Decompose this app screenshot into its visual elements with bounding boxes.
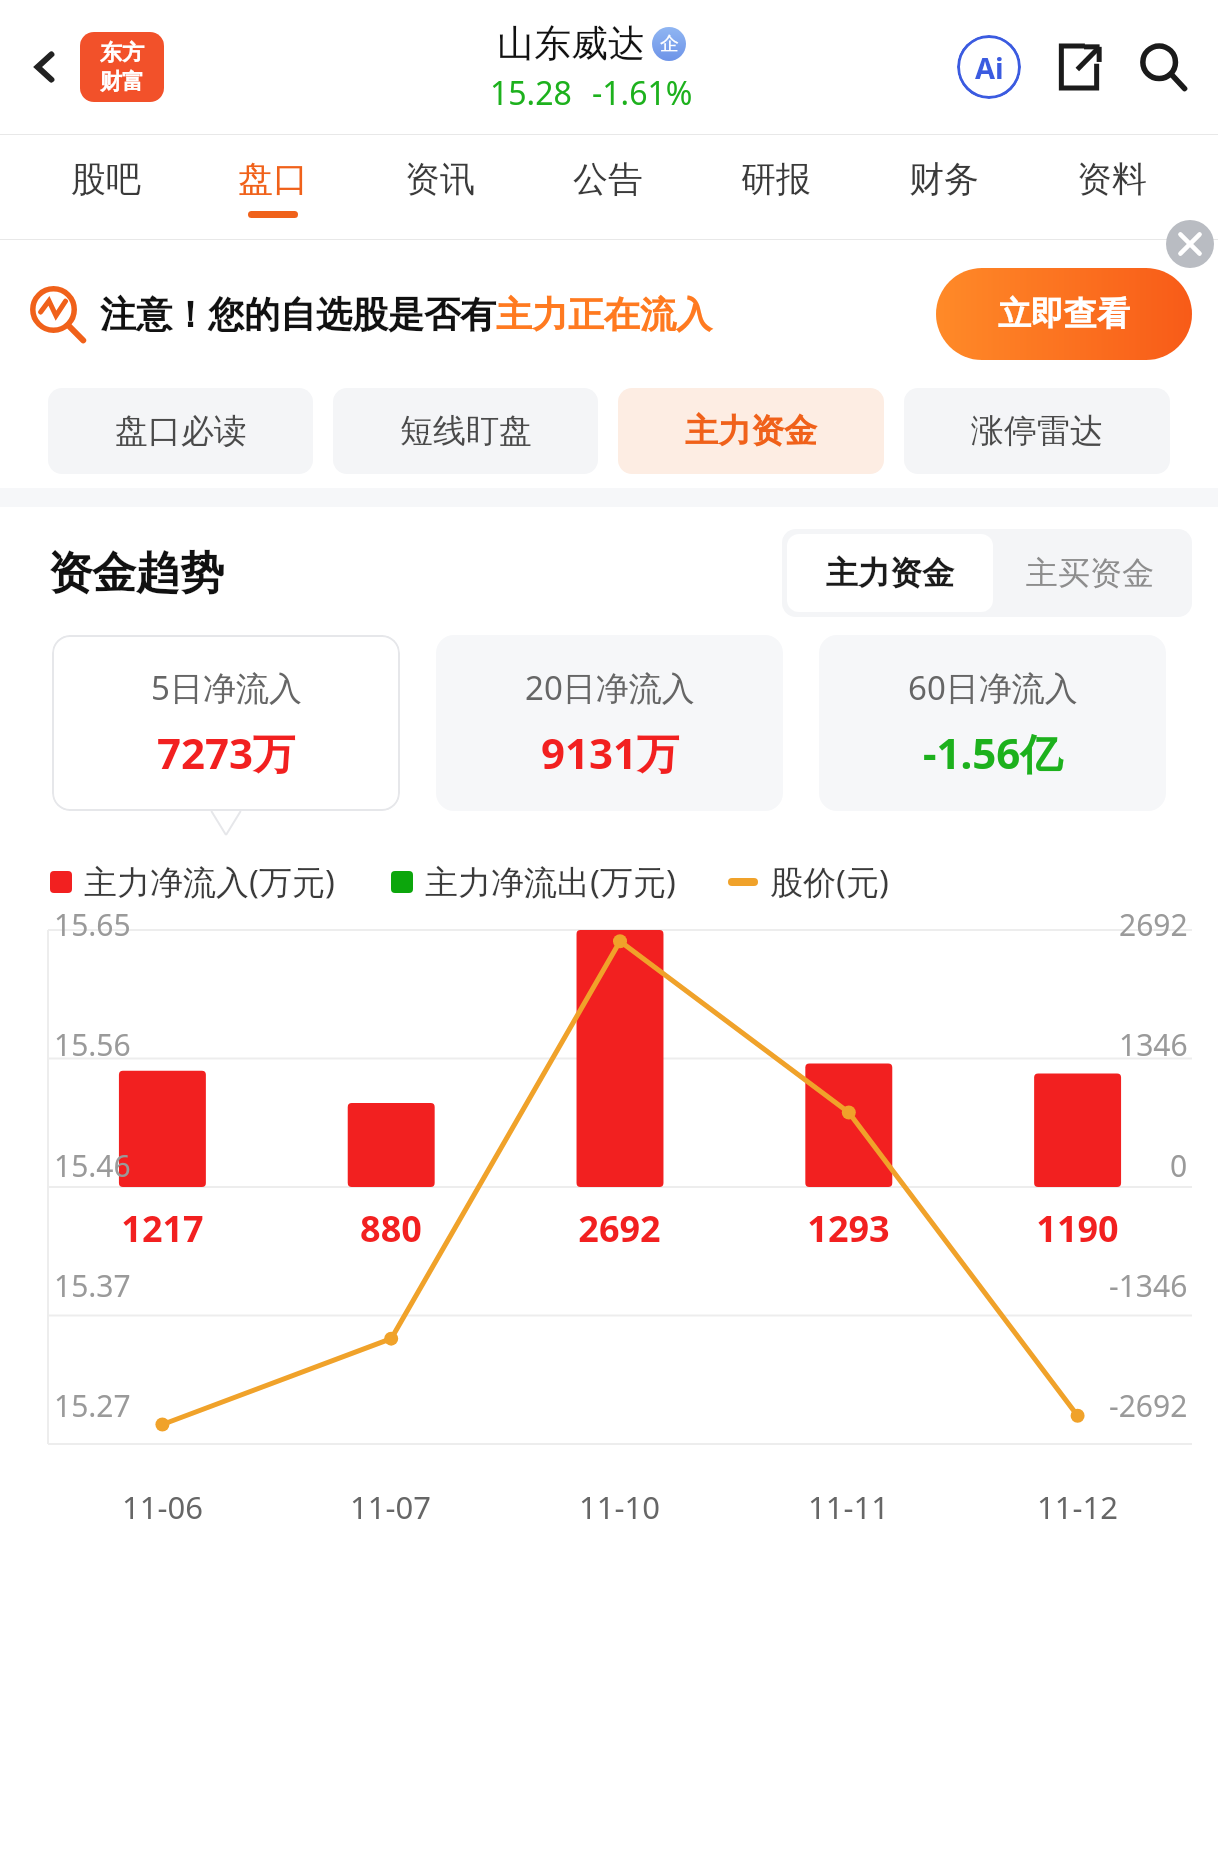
button[interactable]: East Money [80, 32, 164, 102]
button[interactable]: 60日净流入 [819, 635, 1166, 811]
staticText: 注意！您的自选股是否有 [100, 292, 496, 337]
staticText: -1.56亿 [923, 724, 1063, 781]
button[interactable]: 主买资金 [993, 534, 1187, 612]
staticText: -2692 [1109, 1385, 1188, 1426]
staticText: 盘口必读 [115, 410, 247, 452]
staticText: 5日净流入 [151, 665, 302, 710]
staticText: 1293 [807, 1204, 890, 1253]
staticText: 资讯 [405, 157, 475, 201]
staticText: 财务 [909, 157, 979, 201]
staticText: 主力资金 [826, 553, 954, 593]
staticText: 财富 [100, 68, 144, 96]
staticText: 11-07 [350, 1486, 431, 1528]
staticText: 短线盯盘 [400, 410, 532, 452]
button[interactable]: 短线盯盘 [333, 388, 598, 474]
staticText: 主力正在流入 [496, 292, 712, 337]
staticText: -1346 [1109, 1265, 1188, 1306]
staticText: 20日净流入 [525, 665, 695, 710]
staticText: 15.28 [490, 71, 572, 115]
button[interactable]: 研报 [692, 135, 860, 239]
staticText: 1346 [1119, 1024, 1188, 1065]
button[interactable]: AI assistant [950, 28, 1028, 106]
button[interactable]: 盘口 [189, 135, 356, 239]
staticText: 主力净流出(万元) [425, 859, 676, 904]
button[interactable]: 注意！您的自选股是否有 [30, 268, 1192, 360]
staticText: 11-10 [579, 1486, 660, 1528]
staticText: 60日净流入 [908, 665, 1078, 710]
staticText: 研报 [741, 157, 811, 201]
button[interactable]: 立即查看 [936, 268, 1192, 360]
button[interactable]: 公告 [524, 135, 692, 239]
staticText: 东方 [100, 39, 144, 67]
staticText: Ai [975, 48, 1004, 87]
staticText: -1.61% [592, 71, 693, 115]
staticText: 11-12 [1037, 1486, 1118, 1528]
staticText: 1190 [1036, 1204, 1119, 1253]
staticText: 15.46 [54, 1145, 131, 1186]
staticText: 主买资金 [1026, 553, 1154, 593]
button[interactable]: 涨停雷达 [904, 388, 1170, 474]
button[interactable]: 主力资金 [787, 534, 993, 612]
staticText: 股吧 [71, 157, 141, 201]
staticText: 股价(元) [770, 859, 889, 904]
staticText: 涨停雷达 [971, 410, 1103, 452]
button[interactable]: Search [1126, 30, 1200, 104]
button[interactable]: 20日净流入 [436, 635, 783, 811]
staticText: 1217 [121, 1204, 204, 1253]
staticText: 15.56 [54, 1024, 131, 1065]
staticText: 11-11 [808, 1486, 889, 1528]
staticText: 主力资金 [685, 410, 817, 452]
staticText: 2692 [578, 1204, 661, 1253]
button[interactable]: 资料 [1028, 135, 1196, 239]
staticText: 资料 [1077, 157, 1147, 201]
staticText: 资金趋势 [48, 546, 224, 601]
staticText: 11-06 [122, 1486, 203, 1528]
staticText: 盘口 [238, 157, 308, 201]
staticText: 15.27 [54, 1385, 131, 1426]
staticText: 15.65 [54, 904, 131, 945]
staticText: 9131万 [541, 724, 680, 781]
staticText: 0 [1170, 1145, 1188, 1186]
staticText: 主力净流入(万元) [84, 859, 335, 904]
button[interactable]: 盘口必读 [48, 388, 313, 474]
button[interactable]: Close [1162, 216, 1218, 272]
staticText: 立即查看 [998, 293, 1130, 335]
staticText: 公告 [573, 157, 643, 201]
button[interactable]: 资讯 [356, 135, 524, 239]
button[interactable]: Share [1042, 30, 1116, 104]
button[interactable]: 股吧 [22, 135, 189, 239]
staticText: 15.37 [54, 1265, 131, 1306]
button[interactable]: 财务 [860, 135, 1028, 239]
staticText: 企 [660, 32, 679, 56]
button[interactable]: 5日净流入 [52, 635, 400, 811]
staticText: 7273万 [157, 724, 296, 781]
staticText: 2692 [1119, 904, 1188, 945]
staticText: 山东威达 [497, 20, 645, 67]
button[interactable]: Back [14, 35, 78, 99]
staticText: 880 [360, 1204, 422, 1253]
button[interactable]: 主力资金 [618, 388, 884, 474]
